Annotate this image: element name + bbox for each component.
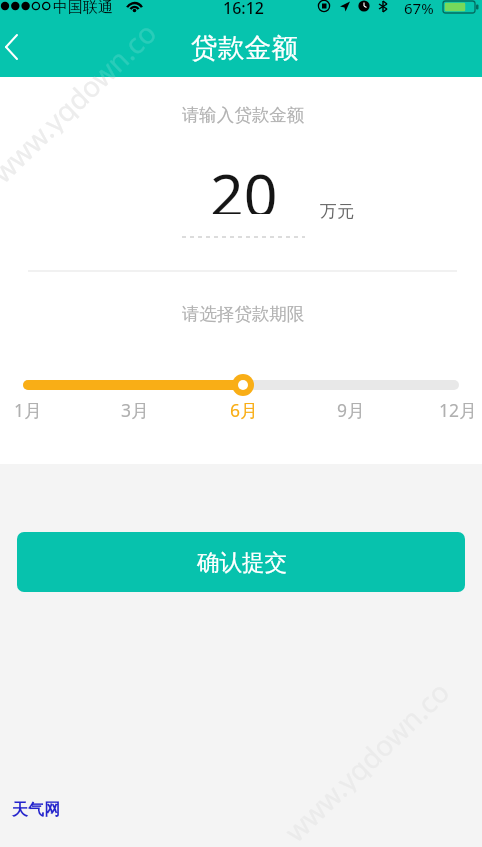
staticText: 6月 bbox=[230, 398, 258, 422]
button[interactable]: 1月 bbox=[0, 398, 58, 422]
button[interactable]: 6月 bbox=[214, 398, 274, 422]
staticText: 12月 bbox=[439, 398, 477, 422]
staticText: 中国联通 bbox=[53, 0, 113, 17]
staticText: 9月 bbox=[337, 398, 365, 422]
staticText: 请选择贷款期限 bbox=[2, 303, 482, 325]
staticText: 请输入贷款金额 bbox=[2, 104, 482, 126]
button[interactable]: 12月 bbox=[428, 398, 482, 422]
staticText: 贷款金额 bbox=[191, 31, 299, 65]
staticText: 确认提交 bbox=[197, 548, 287, 576]
button[interactable]: Loan term slider bbox=[0, 370, 482, 400]
staticText: 天气网 bbox=[12, 800, 60, 820]
staticText: 67% bbox=[404, 0, 434, 18]
button[interactable]: 确认提交 bbox=[17, 532, 465, 592]
button[interactable]: Back bbox=[0, 22, 48, 77]
staticText: www.yqdown.com bbox=[0, 0, 179, 77]
staticText: 16:12 bbox=[223, 0, 264, 19]
button[interactable]: 9月 bbox=[321, 398, 381, 422]
staticText: 万元 bbox=[320, 201, 354, 222]
button[interactable]: 3月 bbox=[105, 398, 165, 422]
staticText: 1月 bbox=[14, 398, 42, 422]
staticText: www.yqdown.com bbox=[0, 77, 179, 188]
staticText: 3月 bbox=[121, 398, 149, 422]
staticText: 20 bbox=[210, 154, 278, 214]
